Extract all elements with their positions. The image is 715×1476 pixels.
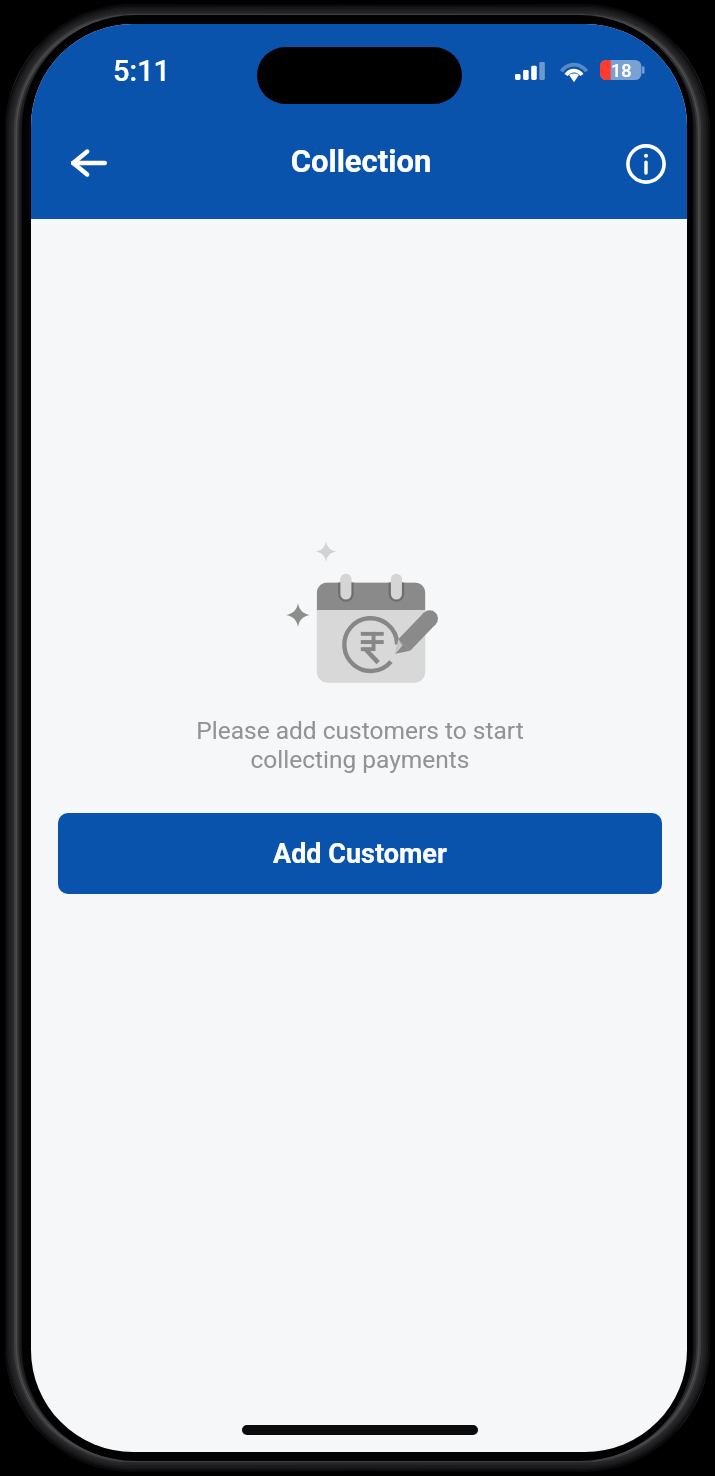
staticText: 5:11 xyxy=(113,54,171,88)
button[interactable]: Back xyxy=(59,133,119,193)
button[interactable]: Information xyxy=(616,134,676,194)
staticText: 18 xyxy=(611,60,632,80)
staticText: Add Customer xyxy=(273,838,447,870)
staticText: Please add customers to start collecting… xyxy=(32,716,687,774)
button[interactable]: Add Customer xyxy=(58,813,662,894)
staticText: Collection xyxy=(33,143,687,179)
